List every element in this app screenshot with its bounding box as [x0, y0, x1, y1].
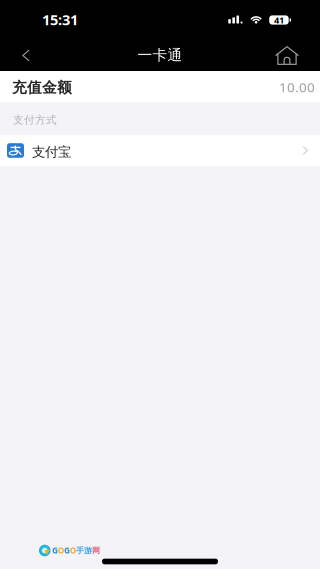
staticText: 一卡通 [137, 46, 182, 64]
staticText: 10.00 [279, 78, 315, 96]
staticText: O [58, 545, 64, 556]
staticText: 支付宝 [32, 144, 71, 160]
staticText: 41 [274, 14, 284, 26]
button[interactable]: Back [6, 36, 46, 71]
staticText: 支付方式 [13, 113, 57, 126]
staticText: 手游 [76, 546, 92, 555]
staticText: 网 [92, 546, 100, 555]
staticText: O [70, 545, 76, 556]
button[interactable]: Home [267, 36, 307, 71]
button[interactable]: 支付宝 [0, 135, 320, 166]
staticText: G [64, 545, 70, 556]
staticText: 充值金额 [12, 78, 72, 96]
staticText: 15:31 [42, 10, 78, 29]
staticText: G [52, 545, 58, 556]
